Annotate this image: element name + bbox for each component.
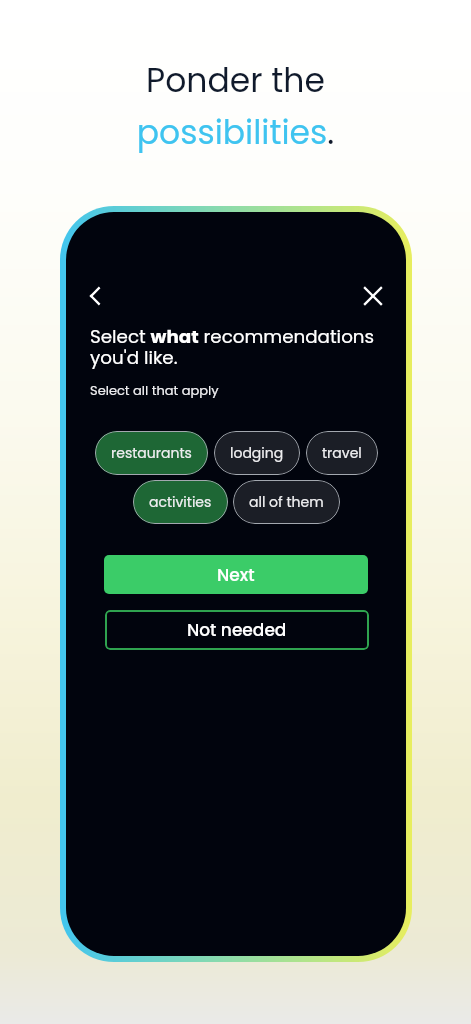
staticText: Not needed <box>187 618 287 642</box>
button[interactable]: Back <box>83 284 107 308</box>
button[interactable]: Next <box>104 555 368 594</box>
button[interactable]: lodging <box>214 431 300 475</box>
button[interactable]: Close <box>361 284 385 308</box>
button[interactable]: activities <box>133 480 228 524</box>
staticText: travel <box>322 443 362 463</box>
button[interactable]: travel <box>306 431 378 475</box>
staticText: activities <box>149 492 212 512</box>
staticText: restaurants <box>111 443 192 463</box>
staticText: Ponder the possibilities. <box>0 57 471 156</box>
staticText: lodging <box>230 443 284 463</box>
staticText: Select all that apply <box>90 381 219 399</box>
button[interactable]: Not needed <box>105 610 369 650</box>
button[interactable]: all of them <box>233 480 340 524</box>
staticText: Next <box>217 563 255 587</box>
staticText: all of them <box>249 492 324 512</box>
staticText: Select what recommendations you'd like. <box>90 324 375 370</box>
button[interactable]: restaurants <box>95 431 208 475</box>
